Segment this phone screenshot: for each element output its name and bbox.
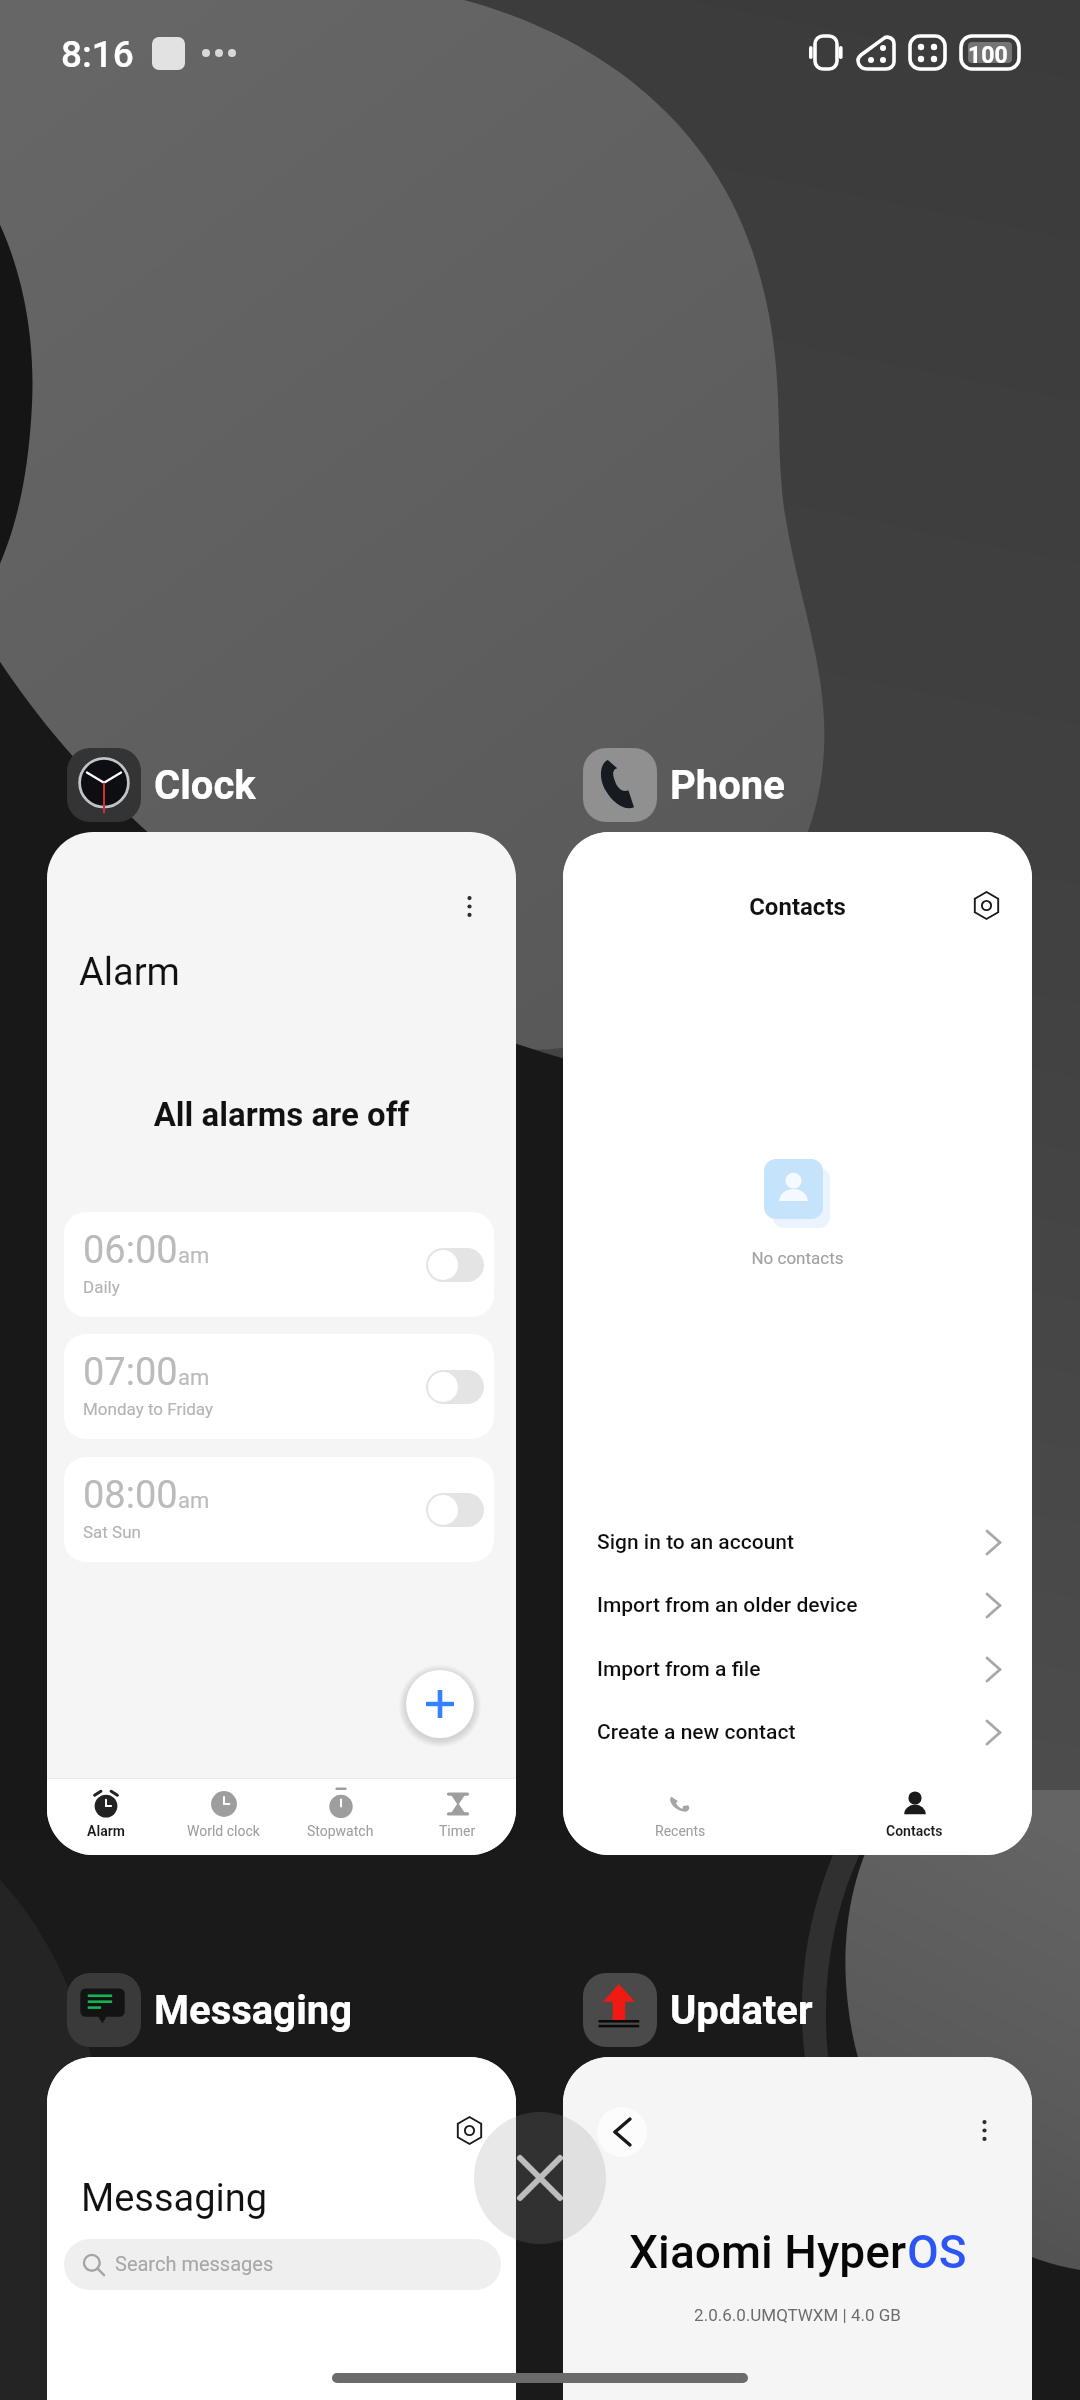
button[interactable]: Settings bbox=[973, 892, 1000, 919]
staticText: Sign in to an account bbox=[597, 1530, 794, 1555]
button[interactable]: 06:00 bbox=[64, 1212, 494, 1317]
staticText: Phone bbox=[670, 762, 785, 809]
staticText: Import from an older device bbox=[597, 1593, 858, 1618]
staticText: Import from a file bbox=[597, 1657, 761, 1682]
staticText: Recents bbox=[655, 1823, 706, 1839]
button[interactable]: World clock bbox=[165, 1779, 282, 1855]
staticText: Sat Sun bbox=[83, 1522, 141, 1542]
button[interactable]: Back bbox=[563, 2057, 1032, 2400]
staticText: Updater bbox=[670, 1987, 813, 2034]
staticText: Clock bbox=[154, 762, 256, 809]
staticText: Alarm bbox=[79, 950, 180, 995]
staticText: OS bbox=[907, 2225, 967, 2279]
staticText: 2.0.6.0.UMQTWXM | 4.0 GB bbox=[563, 2305, 1032, 2325]
staticText: Messaging bbox=[81, 2176, 268, 2221]
staticText: Monday to Friday bbox=[83, 1399, 214, 1419]
staticText: 8:16 bbox=[61, 33, 134, 76]
button[interactable]: Stopwatch bbox=[282, 1779, 399, 1855]
staticText: Messaging bbox=[154, 1987, 352, 2034]
button[interactable]: Contacts bbox=[797, 1779, 1032, 1855]
staticText: 100 bbox=[968, 42, 1008, 69]
staticText: Xiaomi Hyper bbox=[629, 2225, 907, 2279]
button[interactable]: Import from a file bbox=[563, 1640, 1032, 1700]
staticText: No contacts bbox=[563, 1248, 1032, 1268]
staticText: am bbox=[178, 1488, 210, 1514]
staticText: Daily bbox=[83, 1277, 120, 1297]
button[interactable]: 07:00 bbox=[64, 1334, 494, 1439]
button[interactable]: Recents bbox=[563, 1779, 797, 1855]
button[interactable]: Back bbox=[597, 2107, 647, 2157]
button[interactable]: Toggle alarm bbox=[426, 1370, 484, 1404]
staticText: Stopwatch bbox=[307, 1823, 374, 1839]
button[interactable]: 08:00 bbox=[64, 1457, 494, 1562]
staticText: All alarms are off bbox=[47, 1095, 516, 1134]
staticText: 06:00 bbox=[83, 1228, 178, 1273]
button[interactable]: Add alarm bbox=[406, 1670, 474, 1738]
button[interactable]: Toggle alarm bbox=[426, 1493, 484, 1527]
staticText: 07:00 bbox=[83, 1350, 178, 1395]
staticText: Create a new contact bbox=[597, 1720, 796, 1745]
button[interactable]: Create a new contact bbox=[563, 1703, 1032, 1763]
staticText: Timer bbox=[439, 1823, 476, 1839]
button[interactable]: Settings bbox=[456, 2117, 483, 2144]
staticText: Contacts bbox=[563, 893, 1032, 921]
button[interactable]: More options bbox=[980, 2120, 989, 2142]
button[interactable]: Contacts bbox=[563, 832, 1032, 1855]
staticText: 08:00 bbox=[83, 1473, 178, 1518]
button[interactable]: Import from an older device bbox=[563, 1576, 1032, 1636]
staticText: Contacts bbox=[886, 1823, 943, 1839]
button[interactable]: Settings bbox=[47, 2057, 516, 2400]
staticText: am bbox=[178, 1365, 210, 1391]
button[interactable]: More options bbox=[465, 896, 474, 918]
button[interactable]: Close all bbox=[474, 2112, 606, 2244]
button[interactable]: Toggle alarm bbox=[426, 1248, 484, 1282]
button[interactable]: Timer bbox=[399, 1779, 516, 1855]
staticText: Search messages bbox=[115, 2252, 274, 2275]
button[interactable]: More options bbox=[47, 832, 516, 1855]
button[interactable]: Alarm bbox=[47, 1779, 165, 1855]
button[interactable]: Sign in to an account bbox=[563, 1513, 1032, 1573]
staticText: World clock bbox=[187, 1823, 260, 1839]
button[interactable]: Search messages bbox=[64, 2239, 501, 2290]
staticText: am bbox=[178, 1243, 210, 1269]
staticText: Alarm bbox=[87, 1823, 125, 1839]
